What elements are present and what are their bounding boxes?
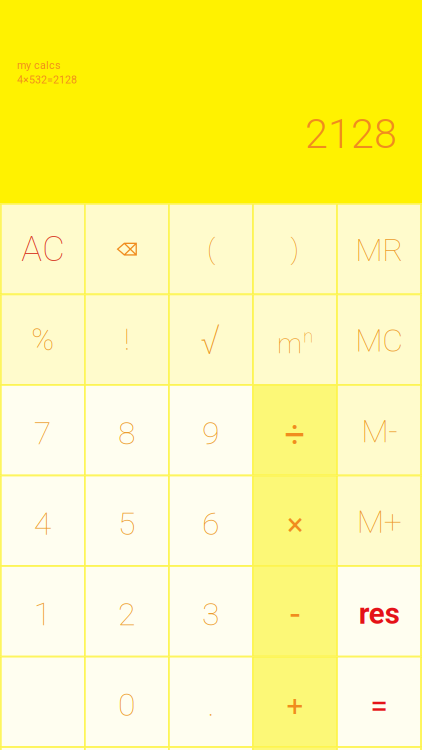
staticText: .: [207, 686, 214, 724]
staticText: 3: [202, 596, 220, 633]
button[interactable]: 7: [2, 386, 84, 475]
staticText: √: [200, 315, 221, 364]
staticText: MC: [355, 322, 403, 359]
staticText: 1: [34, 596, 52, 633]
staticText: 2128: [305, 110, 397, 158]
button[interactable]: =: [338, 657, 420, 746]
staticText: my calcs: [17, 59, 61, 71]
button[interactable]: ÷: [254, 386, 336, 475]
staticText: %: [31, 322, 54, 358]
staticText: n: [303, 325, 313, 347]
button[interactable]: Delete: [86, 205, 168, 294]
button[interactable]: 5: [86, 476, 168, 565]
button[interactable]: MC: [338, 295, 420, 384]
staticText: 4×532=2128: [17, 74, 77, 86]
staticText: MR: [355, 231, 403, 269]
staticText: AC: [21, 229, 64, 269]
button[interactable]: AC: [2, 205, 84, 294]
button[interactable]: 2: [86, 567, 168, 656]
button[interactable]: 6: [170, 476, 252, 565]
button[interactable]: .: [170, 657, 252, 746]
staticText: 8: [118, 414, 136, 452]
staticText: ): [291, 233, 300, 265]
button[interactable]: 8: [86, 386, 168, 475]
button[interactable]: M+: [338, 476, 420, 565]
staticText: 9: [202, 414, 220, 452]
button[interactable]: -: [254, 567, 336, 656]
staticText: 6: [202, 505, 220, 542]
button[interactable]: [2, 657, 84, 746]
button[interactable]: 3: [170, 567, 252, 656]
button[interactable]: +: [254, 657, 336, 746]
staticText: m: [277, 327, 302, 360]
button[interactable]: 0: [86, 657, 168, 746]
staticText: M+: [357, 503, 402, 540]
button[interactable]: MR: [338, 205, 420, 294]
staticText: 0: [118, 686, 136, 724]
staticText: =: [370, 687, 388, 725]
staticText: 5: [118, 505, 136, 542]
staticText: res: [359, 597, 400, 631]
button[interactable]: 4: [2, 476, 84, 565]
staticText: (: [207, 233, 215, 265]
staticText: 7: [34, 414, 52, 452]
button[interactable]: !: [86, 295, 168, 384]
button[interactable]: ×: [254, 476, 336, 565]
button[interactable]: m: [254, 295, 336, 384]
button[interactable]: res: [338, 567, 420, 656]
staticText: -: [290, 593, 300, 635]
button[interactable]: %: [2, 295, 84, 384]
button[interactable]: 9: [170, 386, 252, 475]
button[interactable]: √: [170, 295, 252, 384]
staticText: 4: [34, 505, 52, 542]
button[interactable]: 1: [2, 567, 84, 656]
staticText: M-: [361, 412, 397, 450]
staticText: ÷: [285, 414, 306, 456]
staticText: ×: [287, 507, 303, 543]
staticText: 2: [118, 596, 136, 633]
button[interactable]: ): [254, 205, 336, 294]
button[interactable]: (: [170, 205, 252, 294]
staticText: !: [124, 322, 130, 357]
staticText: +: [287, 689, 304, 724]
button[interactable]: M-: [338, 386, 420, 475]
